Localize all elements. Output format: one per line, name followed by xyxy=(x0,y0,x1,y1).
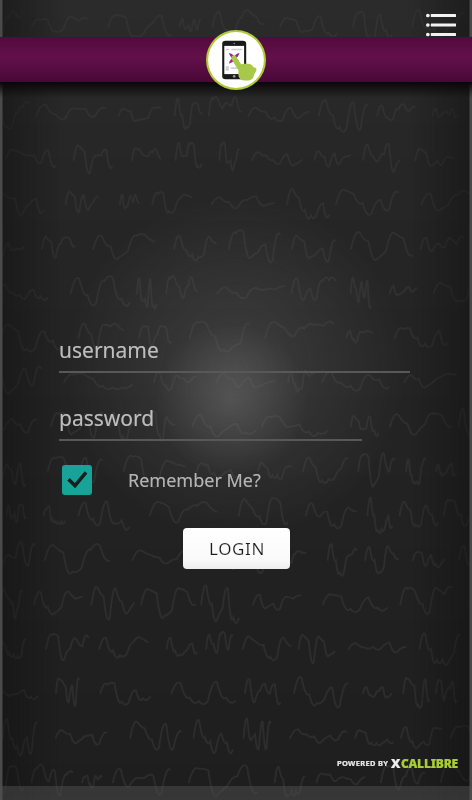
button[interactable]: password xyxy=(59,404,362,441)
staticText: LOGIN xyxy=(209,537,265,560)
staticText: POWERED BY xyxy=(337,758,391,768)
button[interactable]: LOGIN xyxy=(183,528,290,569)
button[interactable]: Menu xyxy=(424,10,458,40)
button[interactable]: XCallibre logo xyxy=(206,30,266,90)
staticText: username xyxy=(59,336,159,365)
button[interactable]: Remember Me? xyxy=(62,465,472,495)
staticText: CALLIBRE xyxy=(401,755,458,771)
staticText: X xyxy=(391,754,401,772)
button[interactable]: username xyxy=(59,336,410,373)
staticText: password xyxy=(59,404,155,433)
staticText: Remember Me? xyxy=(128,468,261,493)
